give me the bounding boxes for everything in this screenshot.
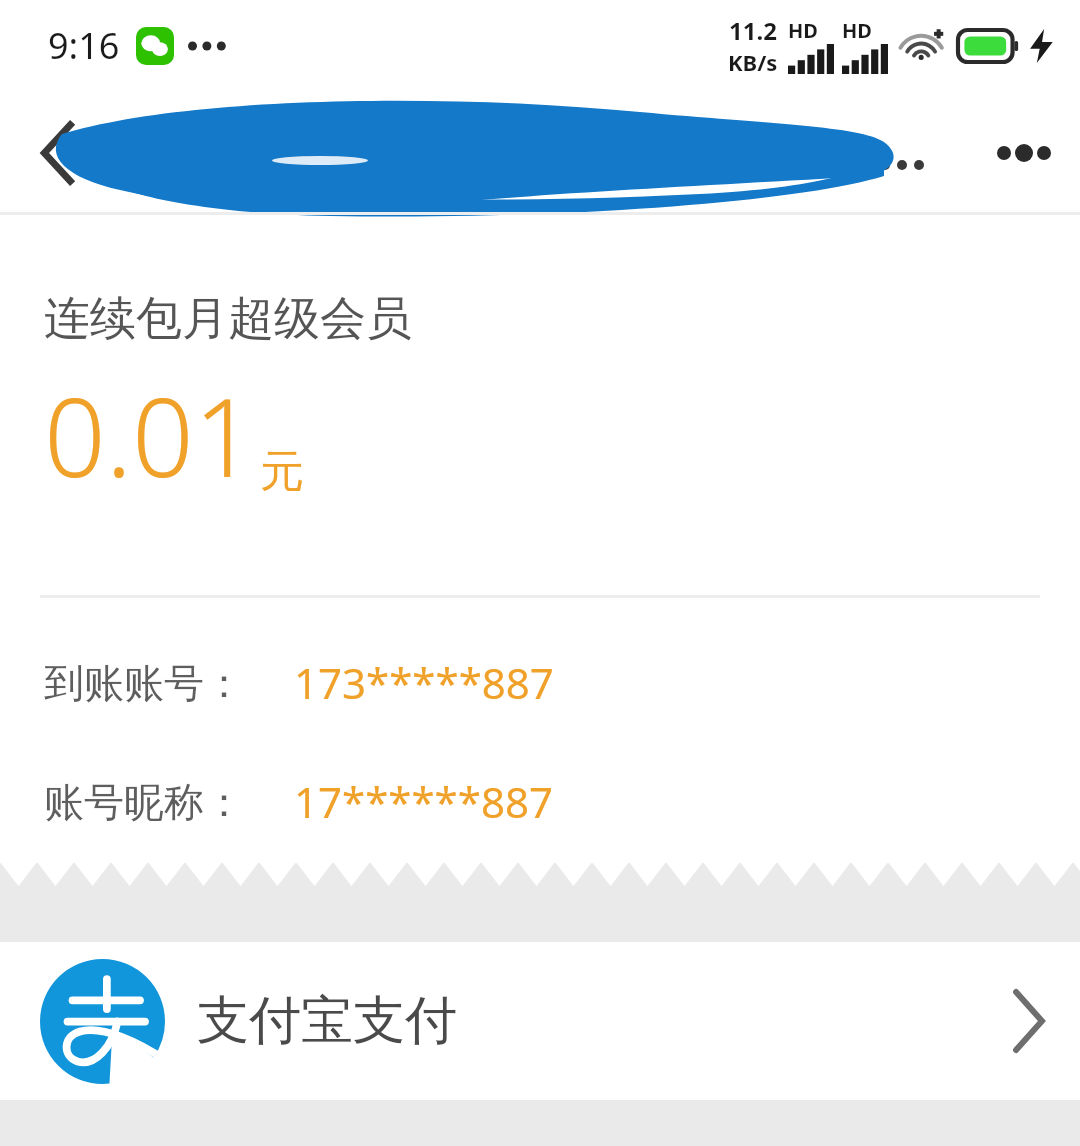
staticText: 173*****887 xyxy=(294,654,554,711)
staticText: 连续包月超级会员 xyxy=(44,290,412,348)
button[interactable]: 支付宝支付 xyxy=(0,942,1080,1100)
staticText: 元 xyxy=(260,444,304,499)
staticText: 到账账号： xyxy=(44,658,244,708)
staticText: 0.01 xyxy=(44,362,256,509)
staticText: KB/s xyxy=(728,47,778,77)
staticText: HD xyxy=(788,17,818,44)
staticText: 账号昵称： xyxy=(44,777,244,827)
staticText: 支付宝支付 xyxy=(197,988,457,1054)
staticText: 17******887 xyxy=(294,773,553,830)
staticText: 9:16 xyxy=(48,21,120,70)
button[interactable]: Back xyxy=(18,113,98,193)
staticText: HD xyxy=(842,17,872,44)
staticText: 11.2 xyxy=(729,14,777,47)
button[interactable]: More options xyxy=(984,113,1064,193)
